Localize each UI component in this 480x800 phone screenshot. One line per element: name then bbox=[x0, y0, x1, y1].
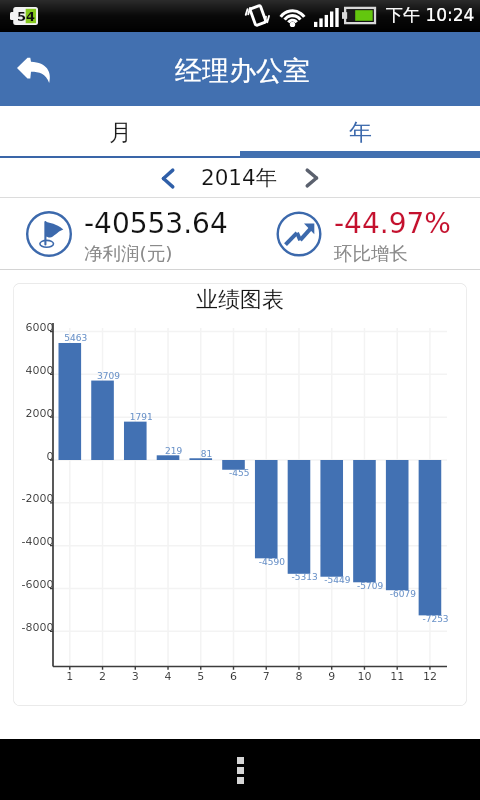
staticText: 业绩图表 bbox=[196, 286, 284, 314]
staticText: 环比增长 bbox=[334, 242, 408, 265]
button[interactable]: 下一年 bbox=[292, 158, 332, 198]
button[interactable]: 返回 bbox=[5, 40, 63, 98]
staticText: -44.97% bbox=[334, 207, 451, 240]
button[interactable]: -40553.64 bbox=[26, 198, 227, 270]
staticText: -40553.64 bbox=[84, 207, 228, 240]
staticText: 经理办公室 bbox=[175, 54, 310, 88]
button[interactable]: 更多选项 bbox=[216, 746, 264, 794]
staticText: 年 bbox=[349, 118, 372, 147]
button[interactable]: -44.97% bbox=[276, 198, 450, 270]
staticText: 54 bbox=[17, 9, 36, 24]
button[interactable]: 上一年 bbox=[148, 158, 188, 198]
staticText: 月 bbox=[109, 118, 132, 147]
staticText: 2014年 bbox=[201, 164, 278, 191]
button[interactable]: 年 bbox=[240, 106, 480, 158]
staticText: 净利润(元) bbox=[84, 242, 173, 265]
staticText: 下午 10:24 bbox=[386, 5, 475, 26]
button[interactable]: 月 bbox=[0, 106, 240, 158]
